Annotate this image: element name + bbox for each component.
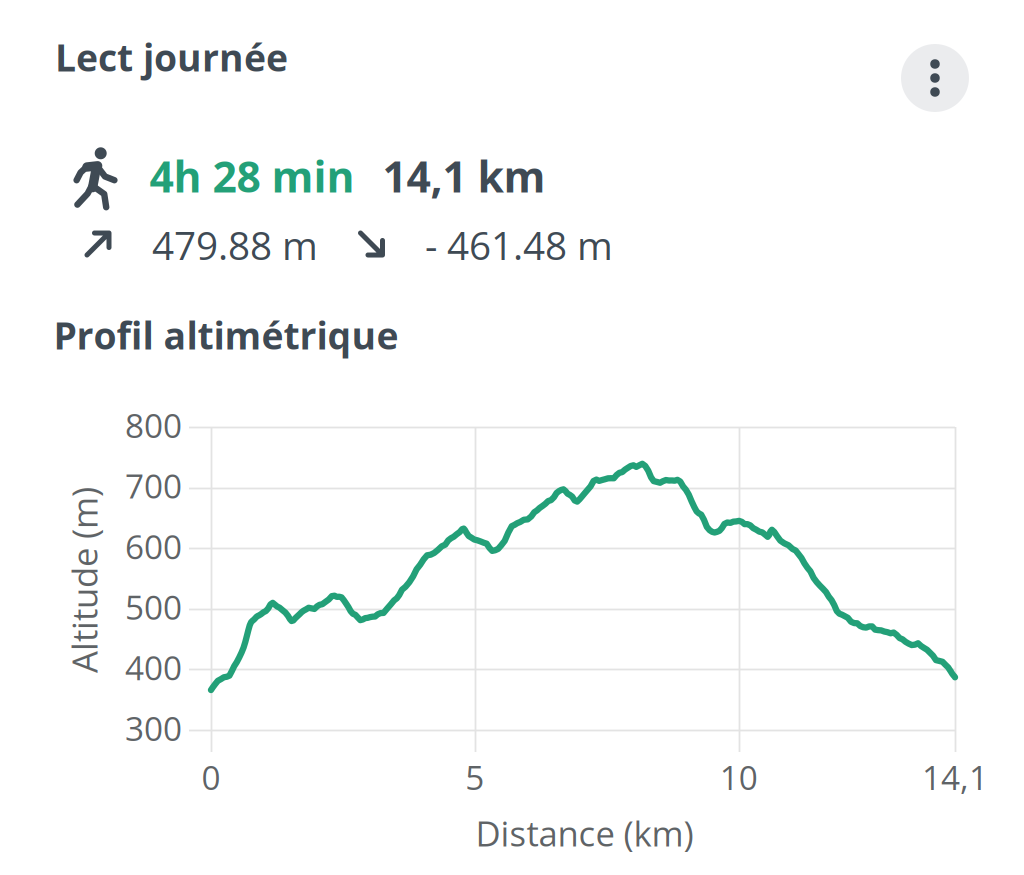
- staticText: 479.88 m: [152, 219, 318, 271]
- staticText: - 461.48 m: [425, 219, 613, 271]
- staticText: 800: [125, 402, 182, 448]
- staticText: 14,1: [922, 754, 988, 800]
- staticText: 14,1 km: [382, 147, 545, 205]
- staticText: Profil altimétrique: [53, 310, 398, 360]
- staticText: 400: [125, 645, 182, 690]
- button[interactable]: More options: [901, 44, 969, 112]
- staticText: 600: [125, 523, 182, 569]
- staticText: Distance (km): [475, 809, 693, 857]
- staticText: 0: [201, 754, 220, 800]
- staticText: 500: [125, 584, 182, 629]
- staticText: Lect journée: [55, 32, 288, 82]
- staticText: 300: [125, 705, 182, 751]
- staticText: 10: [720, 754, 758, 800]
- staticText: Altitude (m): [0, 556, 177, 604]
- staticText: 4h 28 min: [149, 147, 354, 205]
- staticText: 700: [125, 463, 182, 508]
- staticText: 5: [465, 754, 484, 800]
